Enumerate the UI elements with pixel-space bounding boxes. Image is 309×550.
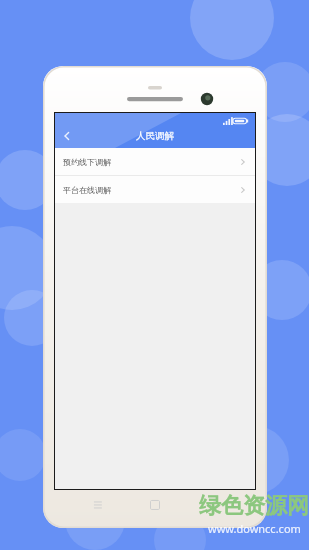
staticText: www.downcc.com (208, 521, 301, 536)
staticText: 平台在线调解 (63, 185, 111, 195)
staticText: 绿色资源网 (199, 492, 309, 520)
staticText: 人民调解 (55, 130, 255, 142)
staticText: 预约线下调解 (63, 157, 111, 167)
button[interactable]: 返回 (55, 124, 79, 148)
button[interactable]: 平台在线调解 (55, 176, 255, 203)
button[interactable]: 预约线下调解 (55, 148, 255, 175)
